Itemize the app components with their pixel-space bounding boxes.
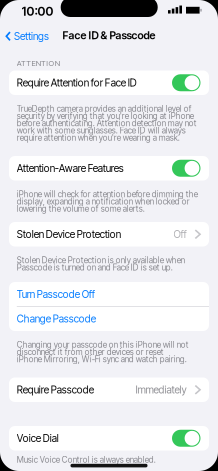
staticText: Stolen Device Protection is only availab… (17, 256, 185, 271)
button[interactable]: Back to Settings (5, 30, 49, 42)
staticText: Attention-Aware Features (17, 162, 124, 174)
staticText: 10:00 (21, 4, 53, 19)
staticText: Face ID & Passcode (62, 29, 155, 42)
button[interactable]: Voice Dial (172, 430, 200, 447)
staticText: Off (173, 228, 186, 240)
button[interactable]: Stolen Device Protection (9, 222, 209, 246)
staticText: Changing your passcode on this iPhone wi… (17, 341, 189, 363)
staticText: TrueDepth camera provides an additional … (17, 105, 197, 141)
staticText: Settings (14, 30, 49, 42)
staticText: iPhone will check for attention before d… (17, 190, 198, 212)
staticText: ATTENTION (17, 58, 60, 68)
staticText: Require Attention for Face ID (17, 77, 137, 89)
staticText: Require Passcode (17, 384, 94, 396)
button[interactable]: Turn Passcode Off (9, 282, 209, 306)
button[interactable]: Change Passcode (9, 306, 209, 331)
button[interactable]: Attention-Aware Features (172, 160, 200, 177)
staticText: Turn Passcode Off (17, 288, 95, 300)
staticText: Stolen Device Protection (17, 228, 121, 240)
staticText: Immediately (135, 384, 186, 396)
staticText: Voice Dial (17, 432, 59, 444)
staticText: Music Voice Control is always enabled. (17, 456, 156, 463)
button[interactable]: Require Passcode (9, 377, 209, 402)
button[interactable]: Require Attention for Face ID (172, 74, 200, 91)
staticText: Change Passcode (17, 313, 96, 325)
